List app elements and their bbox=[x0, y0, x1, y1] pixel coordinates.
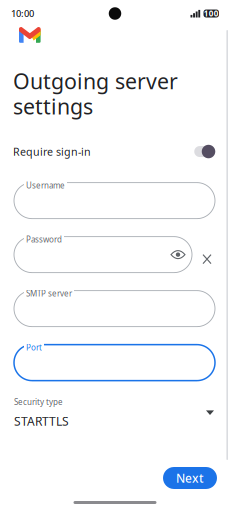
button[interactable]: Username bbox=[14, 183, 215, 219]
staticText: STARTTLS bbox=[14, 413, 69, 429]
staticText: Next bbox=[176, 470, 204, 486]
staticText: Security type bbox=[14, 397, 63, 407]
staticText: SMTP server bbox=[26, 288, 72, 299]
button[interactable]: Next bbox=[163, 467, 217, 489]
button[interactable]: Clear password bbox=[192, 246, 211, 264]
staticText: Port bbox=[26, 342, 42, 353]
staticText: settings bbox=[13, 92, 93, 120]
button[interactable]: Require sign-in bbox=[193, 144, 216, 158]
staticText: Outgoing server bbox=[13, 67, 178, 95]
staticText: 100 bbox=[204, 8, 219, 19]
staticText: Username bbox=[26, 180, 65, 191]
staticText: 10:00 bbox=[11, 7, 34, 20]
staticText: Password bbox=[26, 234, 62, 245]
button[interactable]: Port bbox=[14, 345, 215, 381]
button[interactable]: SMTP server bbox=[14, 291, 215, 327]
button[interactable]: Security type bbox=[0, 397, 230, 429]
button[interactable]: Password bbox=[14, 237, 192, 273]
staticText: Require sign-in bbox=[13, 144, 91, 159]
